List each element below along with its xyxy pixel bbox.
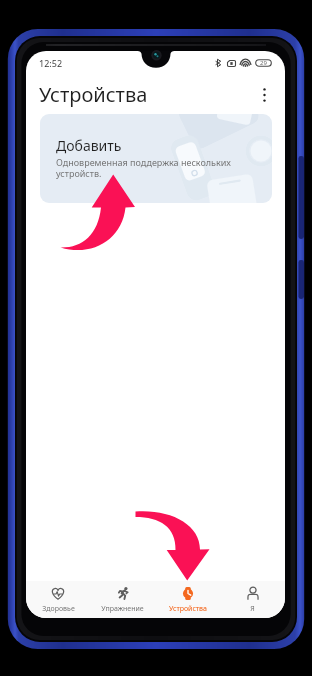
staticText: Здоровье bbox=[42, 604, 75, 614]
staticText: Добавить bbox=[56, 136, 122, 155]
staticText: Устройства bbox=[39, 81, 148, 108]
staticText: Одновременная поддержка нескольких устро… bbox=[56, 156, 253, 180]
staticText: Я bbox=[250, 604, 255, 614]
button[interactable]: More options bbox=[250, 81, 278, 109]
staticText: Упражнение bbox=[101, 604, 144, 614]
button[interactable]: Упражнение bbox=[90, 581, 155, 618]
button[interactable]: Устройства bbox=[155, 581, 220, 618]
button[interactable]: Здоровье bbox=[26, 581, 90, 618]
button[interactable]: Добавить bbox=[40, 114, 272, 203]
button[interactable]: Я bbox=[220, 581, 285, 618]
staticText: 29 bbox=[260, 59, 267, 67]
staticText: Устройства bbox=[169, 604, 207, 614]
staticText: 12:52 bbox=[39, 57, 63, 69]
